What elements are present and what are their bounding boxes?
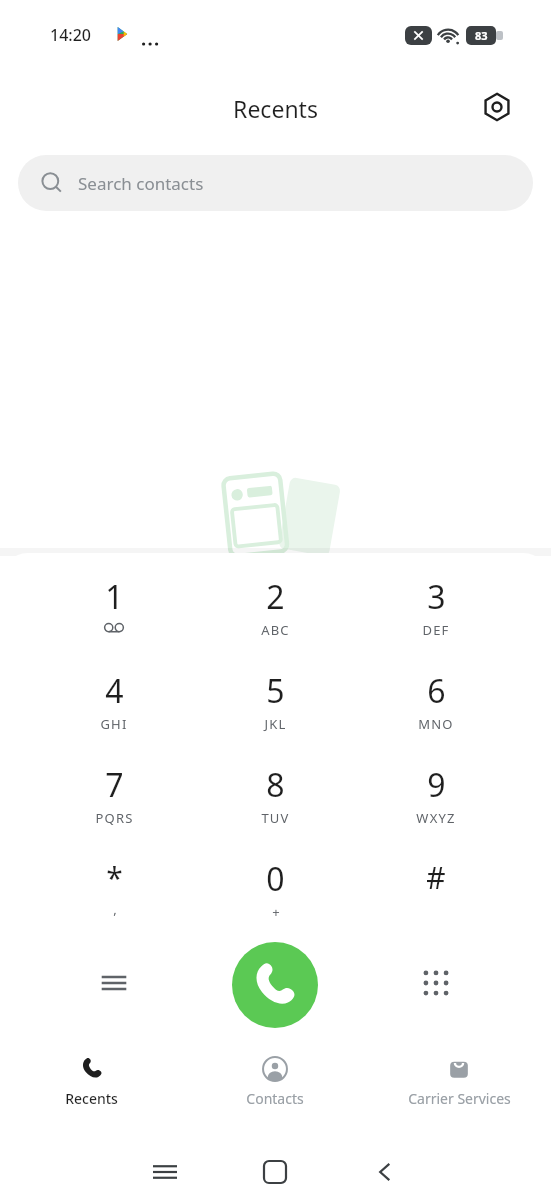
staticText: * xyxy=(106,857,123,898)
staticText: ABC xyxy=(261,621,290,639)
button[interactable]: Contacts xyxy=(183,1040,367,1132)
staticText: 1 xyxy=(105,575,124,619)
button[interactable]: Carrier Services xyxy=(367,1040,551,1132)
staticText: Recents xyxy=(65,1089,118,1108)
button[interactable]: 4 xyxy=(64,669,164,755)
staticText: + xyxy=(272,903,280,921)
staticText: PQRS xyxy=(95,809,134,827)
button[interactable]: * xyxy=(64,857,164,943)
staticText: 9 xyxy=(427,763,446,807)
button[interactable]: 5 xyxy=(225,669,325,755)
button[interactable]: # xyxy=(386,857,486,943)
button[interactable]: 2 xyxy=(225,575,325,661)
staticText: 14:20 xyxy=(50,24,91,46)
staticText: WXYZ xyxy=(416,809,456,827)
button[interactable]: 3 xyxy=(386,575,486,661)
staticText: 8 xyxy=(266,763,285,807)
button[interactable]: Recent apps xyxy=(135,1142,195,1200)
button[interactable]: Settings xyxy=(473,83,521,131)
button[interactable]: 0 xyxy=(225,857,325,943)
staticText: 4 xyxy=(105,669,124,713)
button[interactable]: 8 xyxy=(225,763,325,849)
staticText: 6 xyxy=(427,669,446,713)
staticText: 2 xyxy=(266,575,285,619)
staticText: MNO xyxy=(418,715,454,733)
button[interactable]: Search contacts xyxy=(18,155,533,211)
staticText: 83 xyxy=(475,28,488,43)
staticText: Recents xyxy=(0,93,551,124)
button[interactable]: 6 xyxy=(386,669,486,755)
button[interactable]: Keypad xyxy=(398,945,474,1021)
staticText: DEF xyxy=(422,621,450,639)
button[interactable]: Dial options xyxy=(76,945,152,1021)
button[interactable]: 9 xyxy=(386,763,486,849)
staticText: Contacts xyxy=(246,1089,304,1108)
button[interactable]: Call xyxy=(232,942,318,1028)
button[interactable]: Home xyxy=(245,1142,305,1200)
staticText: 5 xyxy=(266,669,285,713)
staticText: 7 xyxy=(105,763,124,807)
staticText: TUV xyxy=(261,809,290,827)
staticText: # xyxy=(426,857,446,898)
staticText: Search contacts xyxy=(78,172,204,195)
staticText: 0 xyxy=(266,857,285,901)
staticText: 3 xyxy=(427,575,446,619)
staticText: , xyxy=(113,900,117,918)
button[interactable]: Recents xyxy=(0,1040,183,1132)
staticText: JKL xyxy=(264,715,287,733)
staticText: GHI xyxy=(100,715,128,733)
button[interactable]: 1 xyxy=(64,575,164,661)
button[interactable]: Back xyxy=(355,1142,415,1200)
button[interactable]: 7 xyxy=(64,763,164,849)
staticText: Carrier Services xyxy=(408,1089,511,1108)
